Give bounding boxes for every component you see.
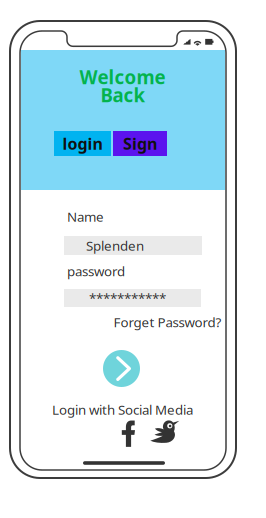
button[interactable]: login [54, 131, 111, 156]
staticText: Back [100, 83, 145, 107]
button[interactable]: Forget Password? [113, 313, 221, 331]
staticText: Sign [123, 133, 157, 154]
staticText: Splenden [86, 237, 144, 254]
button[interactable]: Sign [113, 131, 167, 156]
button[interactable]: Sign in with Facebook [120, 420, 136, 447]
staticText: Name [67, 208, 104, 225]
staticText: login [62, 133, 102, 154]
button[interactable]: Continue [103, 350, 140, 387]
staticText: *********** [89, 289, 166, 307]
button[interactable]: Sign in with Twitter [149, 419, 179, 444]
staticText: Welcome [79, 65, 165, 89]
staticText: Login with Social Media [52, 401, 193, 418]
staticText: Forget Password? [113, 313, 221, 331]
staticText: password [67, 262, 125, 280]
